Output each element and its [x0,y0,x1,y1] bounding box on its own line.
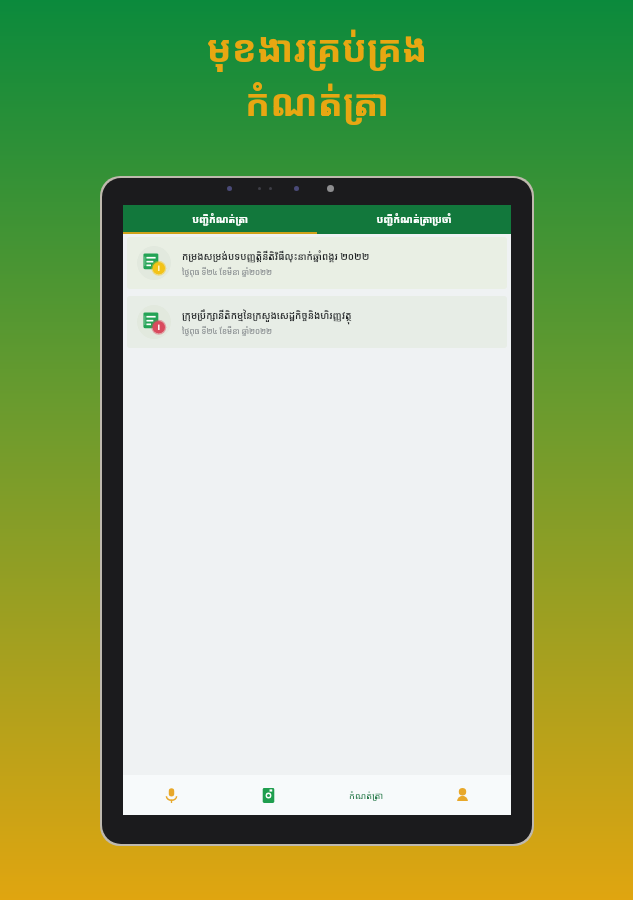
staticText: បញ្ជីកំណត់ត្រាប្រចាំ [376,212,452,226]
button[interactable]: កំណត់ត្រា [317,775,414,815]
staticText: មុខងារគ្រប់គ្រង [206,22,428,72]
button[interactable]: Voice record [123,775,220,815]
staticText: កម្រងសម្រង់បទបញ្ញត្តិនីតិវិធីលុះនាក់ឆ្នា… [182,250,370,263]
button[interactable]: Profile [414,775,511,815]
staticText: កំណត់ត្រា [245,76,389,126]
staticText: កំណត់ត្រា [349,789,383,801]
staticText: ថ្ងៃពុធ ទី២៤ ខែមីនា ឆ្នាំ២០២២ [182,266,273,277]
button[interactable]: បញ្ជីកំណត់ត្រាប្រចាំ [317,205,511,232]
button[interactable]: Documents [220,775,317,815]
staticText: ថ្ងៃពុធ ទី២៤ ខែមីនា ឆ្នាំ២០២២ [182,325,273,336]
staticText: ក្រុមប្រឹក្សានីតិកម្មនៃក្រសួងសេដ្ឋកិច្ចន… [182,309,352,322]
button[interactable]: កម្រងសម្រង់បទបញ្ញត្តិនីតិវិធីលុះនាក់ឆ្នា… [127,237,507,289]
staticText: បញ្ជីកំណត់ត្រា [192,212,248,226]
button[interactable]: បញ្ជីកំណត់ត្រា [123,205,317,232]
button[interactable]: ក្រុមប្រឹក្សានីតិកម្មនៃក្រសួងសេដ្ឋកិច្ចន… [127,296,507,348]
